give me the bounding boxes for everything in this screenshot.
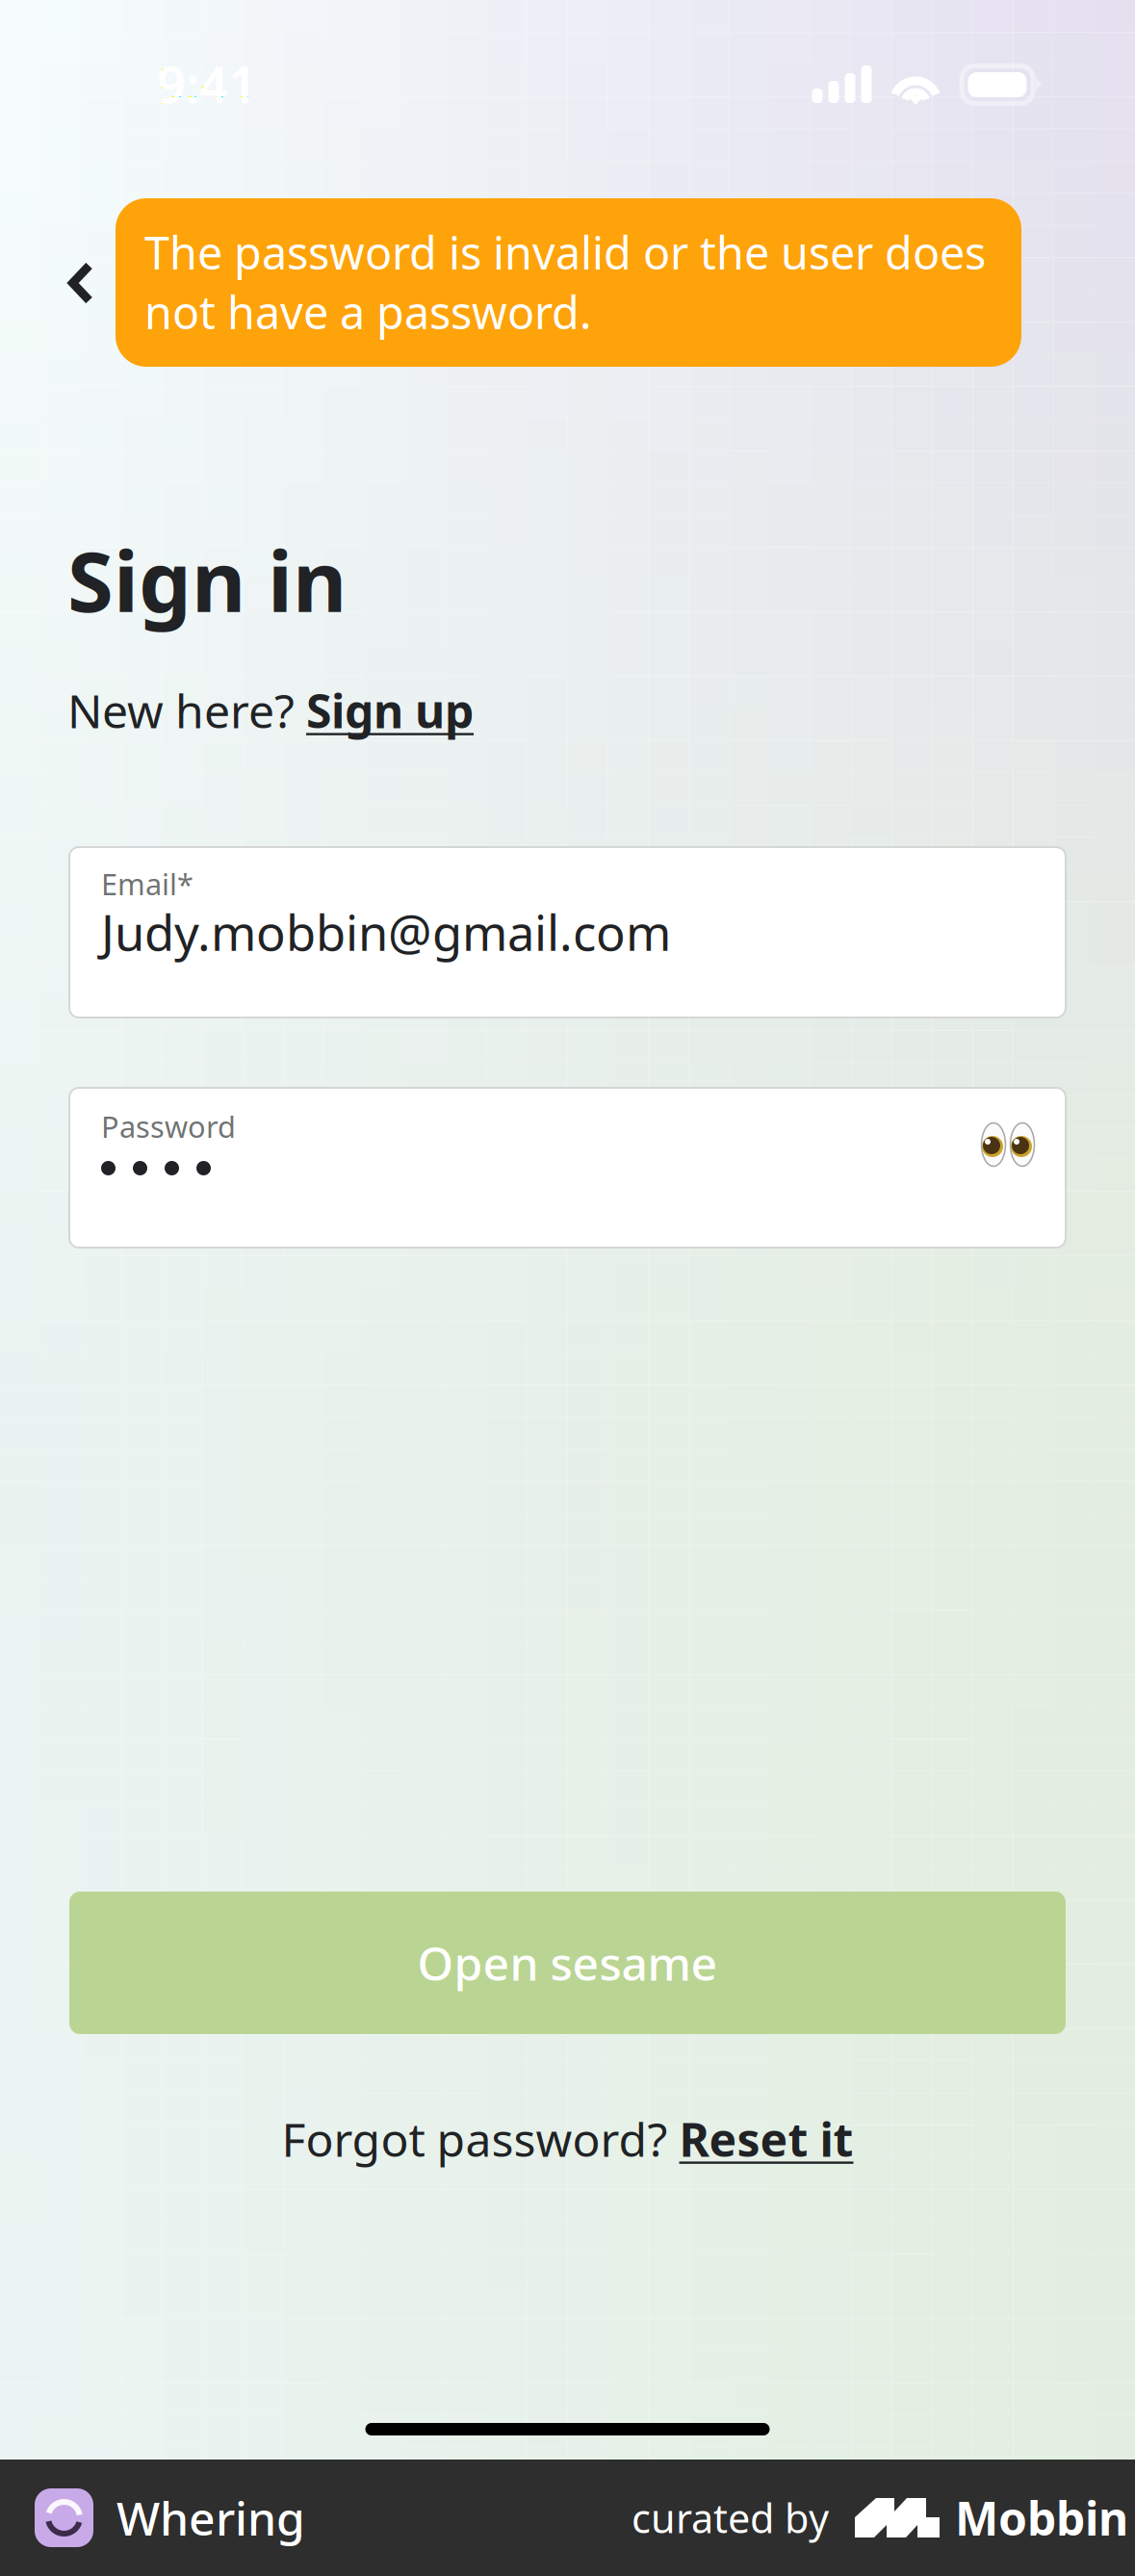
button[interactable]: Open sesame	[69, 1892, 1066, 2034]
staticText: curated by	[632, 2491, 829, 2544]
staticText: Sign up	[306, 680, 474, 741]
button[interactable]: Sign up	[306, 680, 474, 741]
button[interactable]: Reset it	[679, 2108, 853, 2170]
staticText: The password is invalid or the user does	[144, 222, 986, 282]
staticText: Sign in	[67, 524, 347, 635]
staticText: Reset it	[679, 2108, 853, 2170]
button[interactable]: Show password	[981, 1111, 1035, 1167]
staticText: Password	[101, 1107, 236, 1146]
staticText: New here?	[67, 680, 306, 741]
staticText: Mobbin	[955, 2487, 1128, 2548]
staticText: Email*	[101, 864, 193, 903]
staticText: Whering	[116, 2487, 305, 2548]
staticText: Judy.mobbin@gmail.com	[101, 899, 671, 964]
staticText: Open sesame	[417, 1932, 718, 1993]
button[interactable]: Back	[66, 261, 95, 305]
staticText: Forgot password?	[282, 2108, 679, 2170]
staticText: not have a password.	[144, 282, 592, 342]
staticText: 9:41	[157, 51, 257, 117]
